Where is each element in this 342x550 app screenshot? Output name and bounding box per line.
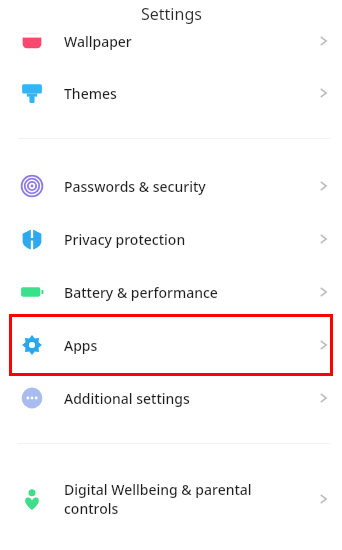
staticText: Apps [64,336,98,355]
button[interactable]: Privacy protection [0,213,342,265]
staticText: Passwords & security [64,177,206,196]
staticText: Wallpaper [64,32,132,51]
staticText: Additional settings [64,389,190,408]
staticText: Settings [141,3,202,25]
staticText: Privacy protection [64,230,186,249]
button[interactable]: Apps [0,319,342,371]
button[interactable]: Themes [0,67,342,119]
staticText: Themes [64,84,117,103]
button[interactable]: Additional settings [0,372,342,424]
button[interactable]: Wallpaper [0,15,342,67]
button[interactable]: Battery & performance [0,266,342,318]
staticText: Battery & performance [64,283,218,302]
button[interactable]: Digital Wellbeing & parental controls [0,468,342,530]
staticText: Digital Wellbeing & parental controls [64,480,252,518]
button[interactable]: Passwords & security [0,160,342,212]
